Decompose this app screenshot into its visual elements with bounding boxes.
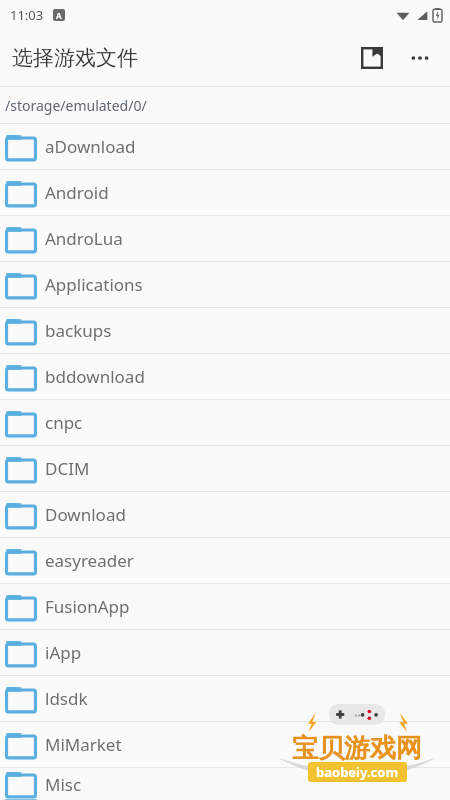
staticText: 选择游戏文件 [12,45,138,71]
staticText: Download [45,503,126,526]
staticText: easyreader [45,549,134,572]
staticText: A [56,10,62,21]
button[interactable]: aDownload [0,124,450,169]
button[interactable]: bddownload [0,354,450,399]
staticText: 宝贝游戏网 [292,732,422,765]
staticText: aDownload [45,135,136,158]
staticText: 11:03 [10,6,44,24]
button[interactable]: Misc [0,768,450,800]
button[interactable]: cnpc [0,400,450,445]
staticText: FusionApp [45,595,130,618]
button[interactable]: backups [0,308,450,353]
staticText: baobeiy.com [316,763,399,781]
staticText: Applications [45,273,143,296]
button[interactable]: More options [396,34,444,82]
button[interactable]: Bookmarks [348,34,396,82]
staticText: backups [45,319,112,342]
button[interactable]: Download [0,492,450,537]
staticText: Android [45,181,109,204]
button[interactable]: DCIM [0,446,450,491]
staticText: AndroLua [45,227,123,250]
staticText: cnpc [45,411,83,434]
staticText: /storage/emulated/0/ [5,96,147,115]
staticText: DCIM [45,457,90,480]
staticText: ldsdk [45,687,88,710]
button[interactable]: FusionApp [0,584,450,629]
button[interactable]: AndroLua [0,216,450,261]
staticText: bddownload [45,365,145,388]
button[interactable]: Applications [0,262,450,307]
button[interactable]: ldsdk [0,676,450,721]
button[interactable]: easyreader [0,538,450,583]
staticText: iApp [45,641,82,664]
button[interactable]: MiMarket [0,722,450,767]
button[interactable]: iApp [0,630,450,675]
button[interactable]: /storage/emulated/0/ [0,87,450,123]
staticText: MiMarket [45,733,122,756]
button[interactable]: Android [0,170,450,215]
staticText: Misc [45,773,82,796]
